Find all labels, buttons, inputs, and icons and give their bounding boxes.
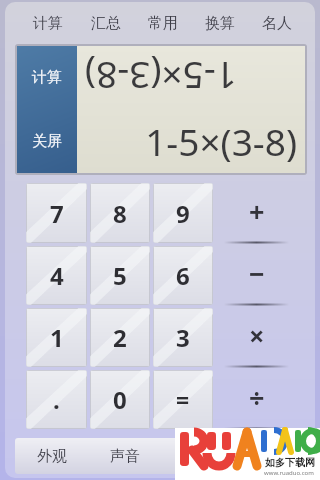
- staticText: 设置: [183, 447, 213, 466]
- staticText: +: [249, 193, 265, 230]
- button[interactable]: Plus: [216, 183, 297, 246]
- button[interactable]: 2: [90, 308, 150, 367]
- staticText: 1-5×(3-8): [85, 52, 299, 102]
- staticText: .: [53, 383, 60, 416]
- button[interactable]: 4: [26, 246, 87, 305]
- staticText: 4: [50, 259, 64, 292]
- staticText: 1: [50, 321, 64, 354]
- button[interactable]: 0: [90, 370, 150, 429]
- button[interactable]: =: [153, 370, 213, 429]
- button[interactable]: 帮助: [234, 438, 307, 474]
- button[interactable]: 计算: [19, 2, 77, 44]
- button[interactable]: .: [26, 370, 87, 429]
- button[interactable]: 8: [90, 183, 150, 243]
- button[interactable]: 声音: [88, 438, 161, 474]
- staticText: 7: [50, 197, 64, 230]
- staticText: ×: [249, 317, 265, 354]
- button[interactable]: 名人: [248, 2, 305, 44]
- staticText: 计算: [33, 14, 63, 33]
- staticText: 2: [113, 321, 127, 354]
- staticText: 如多下载网: [265, 456, 315, 469]
- button[interactable]: 关屏: [17, 109, 77, 173]
- staticText: 换算: [205, 14, 235, 33]
- button[interactable]: 3: [153, 308, 213, 367]
- button[interactable]: Minus: [216, 246, 297, 308]
- staticText: 关屏: [32, 132, 62, 151]
- staticText: 6: [176, 259, 190, 292]
- button[interactable]: 5: [90, 246, 150, 305]
- staticText: 计算: [32, 68, 62, 87]
- button[interactable]: 汇总: [77, 2, 134, 44]
- button[interactable]: 计算: [17, 46, 77, 109]
- button[interactable]: Multiply: [216, 308, 297, 370]
- button[interactable]: 7: [26, 183, 87, 243]
- button[interactable]: 9: [153, 183, 213, 243]
- staticText: 8: [113, 197, 127, 230]
- staticText: 帮助: [256, 447, 286, 466]
- button[interactable]: 外观: [15, 438, 88, 474]
- staticText: =: [176, 384, 190, 415]
- button[interactable]: 6: [153, 246, 213, 305]
- button[interactable]: 换算: [191, 2, 248, 44]
- button[interactable]: 常用: [134, 2, 191, 44]
- staticText: 声音: [110, 447, 140, 466]
- staticText: 常用: [148, 14, 178, 33]
- staticText: 3: [176, 321, 190, 354]
- staticText: www.ruaduo.com: [264, 469, 314, 477]
- staticText: 名人: [262, 14, 292, 33]
- staticText: −: [249, 255, 265, 292]
- staticText: 5: [113, 259, 127, 292]
- staticText: 1-5×(3-8): [83, 116, 297, 166]
- button[interactable]: 设置: [161, 438, 234, 474]
- staticText: 汇总: [91, 14, 121, 33]
- button[interactable]: Divide: [216, 370, 297, 432]
- staticText: 9: [176, 197, 190, 230]
- staticText: ÷: [249, 379, 265, 416]
- button[interactable]: 1: [26, 308, 87, 367]
- staticText: 外观: [37, 447, 67, 466]
- staticText: 0: [113, 383, 127, 416]
